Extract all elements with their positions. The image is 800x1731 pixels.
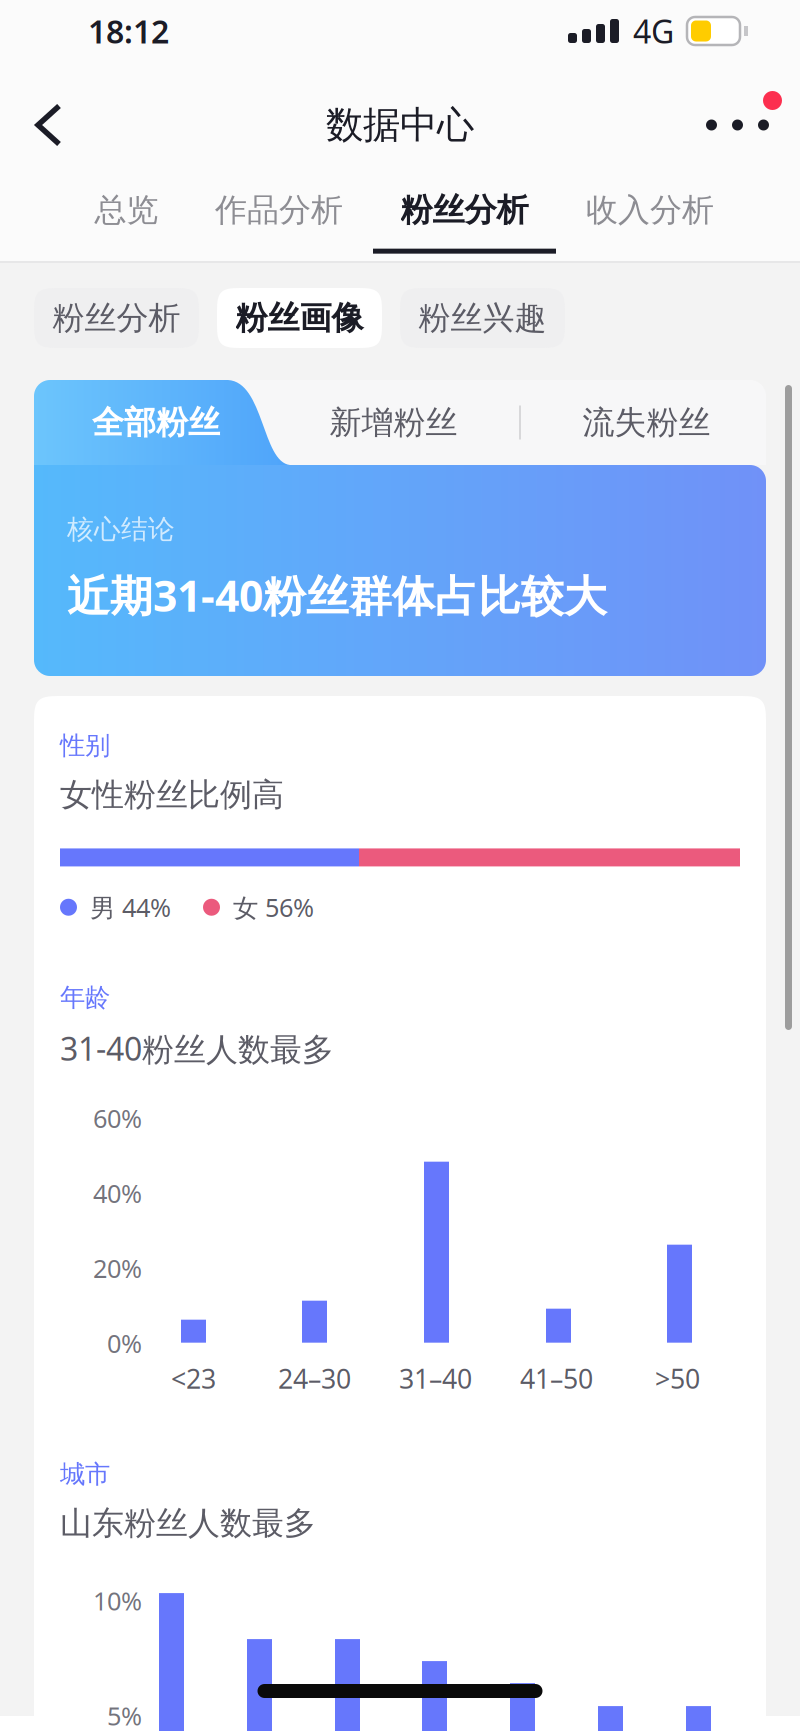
- staticText: 女 56%: [233, 890, 314, 924]
- staticText: 近期31-40粉丝群体占比较大: [67, 567, 607, 623]
- staticText: 4G: [633, 10, 674, 52]
- staticText: >50: [655, 1361, 700, 1396]
- button[interactable]: 粉丝分析: [373, 173, 556, 261]
- staticText: 城市: [60, 1459, 110, 1490]
- staticText: 20%: [93, 1251, 142, 1285]
- staticText: 全部粉丝: [92, 403, 220, 442]
- staticText: 年龄: [60, 982, 110, 1013]
- button[interactable]: 新增粉丝: [298, 380, 489, 465]
- staticText: 5%: [107, 1699, 142, 1731]
- staticText: 作品分析: [215, 190, 343, 230]
- staticText: <23: [171, 1361, 216, 1396]
- staticText: 流失粉丝: [582, 403, 710, 442]
- staticText: 核心结论: [67, 513, 175, 546]
- staticText: 40%: [93, 1176, 142, 1210]
- staticText: 60%: [93, 1101, 142, 1135]
- staticText: 数据中心: [326, 102, 474, 148]
- staticText: 粉丝画像: [235, 298, 363, 338]
- staticText: 总览: [94, 190, 158, 230]
- button[interactable]: 流失粉丝: [551, 380, 742, 465]
- button[interactable]: 总览: [68, 173, 185, 261]
- staticText: 24–30: [278, 1361, 351, 1396]
- staticText: 粉丝分析: [52, 298, 180, 338]
- staticText: 性别: [60, 730, 110, 761]
- staticText: 山东粉丝人数最多: [60, 1504, 316, 1543]
- staticText: 31–40: [399, 1361, 472, 1396]
- button[interactable]: 收入分析: [556, 173, 744, 261]
- button[interactable]: 作品分析: [185, 173, 373, 261]
- button[interactable]: 全部粉丝: [34, 380, 290, 465]
- staticText: 41–50: [520, 1361, 593, 1396]
- staticText: 新增粉丝: [329, 403, 457, 442]
- staticText: 粉丝兴趣: [418, 298, 546, 338]
- staticText: 10%: [93, 1584, 142, 1617]
- button[interactable]: 粉丝画像: [217, 288, 382, 348]
- staticText: 18:12: [88, 10, 169, 52]
- staticText: 收入分析: [586, 190, 714, 230]
- button[interactable]: More: [679, 77, 800, 173]
- button[interactable]: 粉丝兴趣: [400, 288, 565, 348]
- button[interactable]: Back: [0, 77, 93, 173]
- button[interactable]: 粉丝分析: [34, 288, 199, 348]
- staticText: 31-40粉丝人数最多: [60, 1027, 334, 1070]
- staticText: 粉丝分析: [400, 190, 528, 230]
- staticText: 女性粉丝比例高: [60, 775, 284, 814]
- staticText: 0%: [107, 1326, 142, 1360]
- staticText: 男 44%: [90, 890, 171, 924]
